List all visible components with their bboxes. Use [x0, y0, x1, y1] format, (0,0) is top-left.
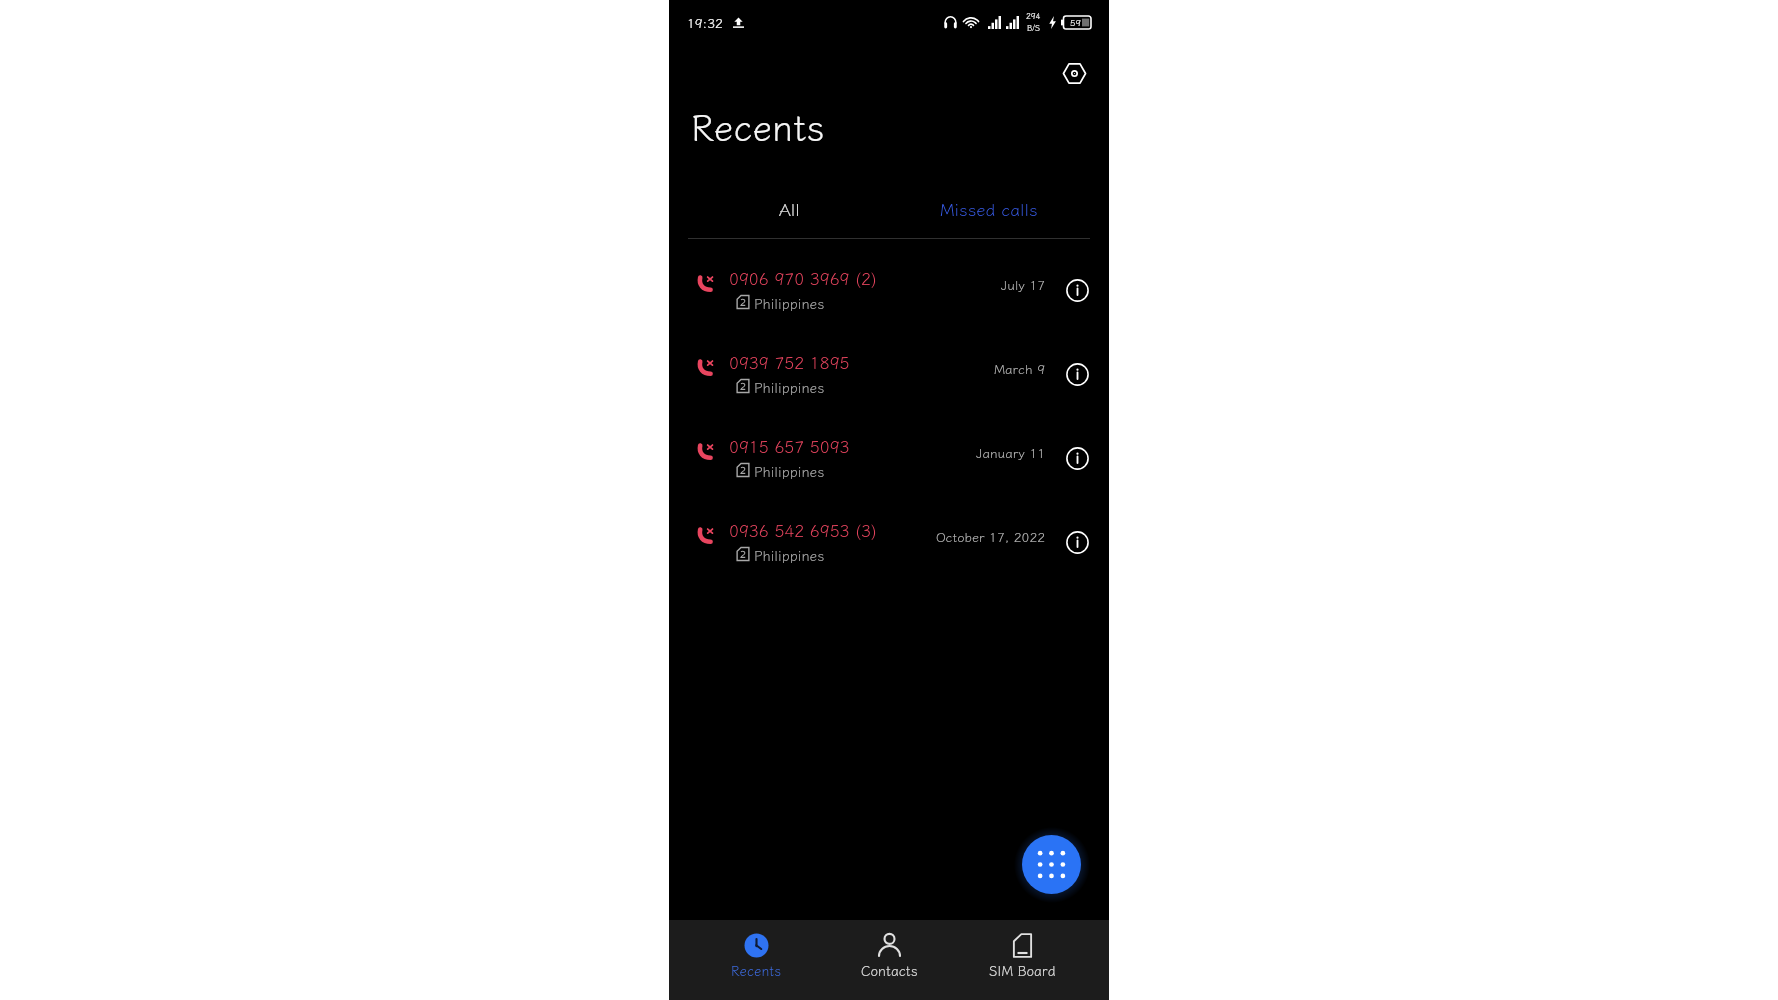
- staticText: Missed calls: [940, 196, 1038, 221]
- staticText: Philippines: [754, 545, 825, 565]
- staticText: Recents: [731, 960, 782, 980]
- button[interactable]: Dialpad: [1022, 835, 1081, 894]
- button[interactable]: 0936 542 6953 (3): [669, 501, 1109, 585]
- staticText: SIM Board: [989, 960, 1056, 980]
- button[interactable]: Call details: [1064, 277, 1090, 303]
- staticText: 19:32: [687, 13, 723, 32]
- button[interactable]: Call details: [1064, 529, 1090, 555]
- staticText: Contacts: [861, 960, 918, 980]
- staticText: January 11: [976, 443, 1045, 462]
- staticText: Philippines: [754, 461, 825, 481]
- button[interactable]: Missed calls: [899, 186, 1079, 230]
- staticText: Recents: [691, 99, 825, 151]
- staticText: 0915 657 5093: [729, 434, 850, 458]
- staticText: 0939 752 1895: [729, 350, 850, 374]
- button[interactable]: 0906 970 3969 (2): [669, 249, 1109, 333]
- button[interactable]: All: [699, 186, 880, 230]
- button[interactable]: 0939 752 1895: [669, 333, 1109, 417]
- button[interactable]: Call details: [1064, 445, 1090, 471]
- staticText: 59: [1070, 16, 1081, 29]
- staticText: July 17: [1000, 275, 1045, 294]
- staticText: All: [779, 196, 800, 221]
- button[interactable]: SIM Board: [978, 920, 1066, 1000]
- staticText: Philippines: [754, 293, 825, 313]
- button[interactable]: Call details: [1064, 361, 1090, 387]
- staticText: 0936 542 6953 (3): [729, 518, 877, 542]
- staticText: Philippines: [754, 377, 825, 397]
- button[interactable]: 0915 657 5093: [669, 417, 1109, 501]
- button[interactable]: Settings: [1059, 58, 1089, 88]
- button[interactable]: Contacts: [845, 920, 933, 1000]
- staticText: 294: [1026, 10, 1041, 22]
- button[interactable]: Recents: [712, 920, 800, 1000]
- staticText: B/S: [1027, 22, 1040, 34]
- staticText: March 9: [993, 359, 1045, 378]
- staticText: 0906 970 3969 (2): [729, 266, 877, 290]
- staticText: October 17, 2022: [935, 527, 1045, 546]
